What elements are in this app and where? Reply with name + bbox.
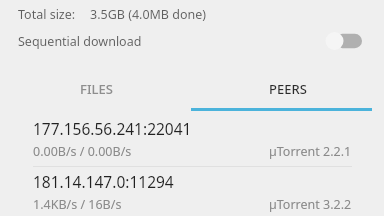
button[interactable]: 177.156.56.241:22041 (0, 111, 384, 166)
staticText: Sequential download (18, 33, 142, 50)
staticText: µTorrent 2.2.1 (269, 143, 352, 160)
button[interactable]: FILES (0, 67, 192, 111)
staticText: 3.5GB (4.0MB done) (90, 6, 207, 23)
staticText: 181.14.147.0:11294 (33, 171, 174, 192)
button[interactable]: Sequential download (0, 25, 384, 57)
button[interactable]: Sequential download toggle (324, 32, 362, 50)
button[interactable]: PEERS (192, 67, 384, 111)
staticText: 177.156.56.241:22041 (33, 118, 192, 139)
button[interactable]: 181.14.147.0:11294 (0, 167, 384, 216)
staticText: Total size: (18, 6, 76, 23)
staticText: 1.4KB/s / 16B/s (33, 196, 122, 213)
staticText: FILES (80, 80, 113, 98)
staticText: PEERS (269, 80, 307, 98)
staticText: µTorrent 3.2.2 (269, 196, 352, 213)
staticText: 0.00B/s / 0.00B/s (33, 143, 132, 160)
